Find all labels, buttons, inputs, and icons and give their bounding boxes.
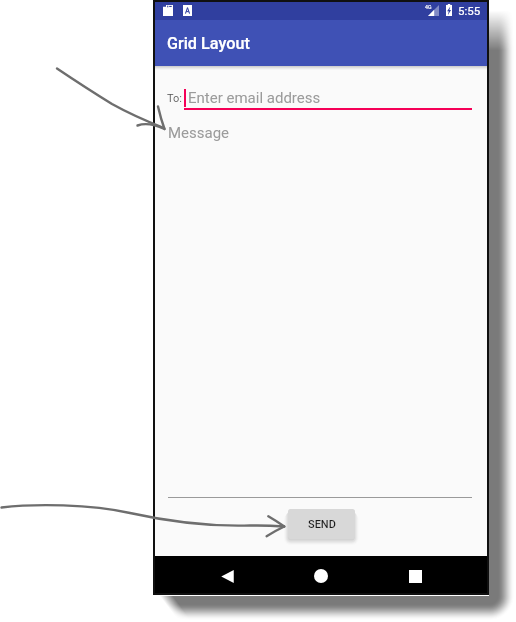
button[interactable]: Enter email address	[184, 89, 472, 110]
button[interactable]: Recent apps	[399, 560, 431, 592]
staticText: Grid Layout	[167, 34, 250, 53]
staticText: Enter email address	[188, 89, 321, 107]
staticText: 5:55	[458, 4, 481, 17]
staticText: SEND	[308, 518, 336, 531]
button[interactable]: Message	[168, 124, 487, 142]
staticText: To:	[167, 92, 182, 105]
staticText: 4G	[425, 4, 432, 10]
button[interactable]: Back	[211, 560, 243, 592]
button[interactable]: SEND	[288, 509, 355, 539]
staticText: Message	[168, 124, 230, 142]
button[interactable]: Home	[305, 560, 337, 592]
